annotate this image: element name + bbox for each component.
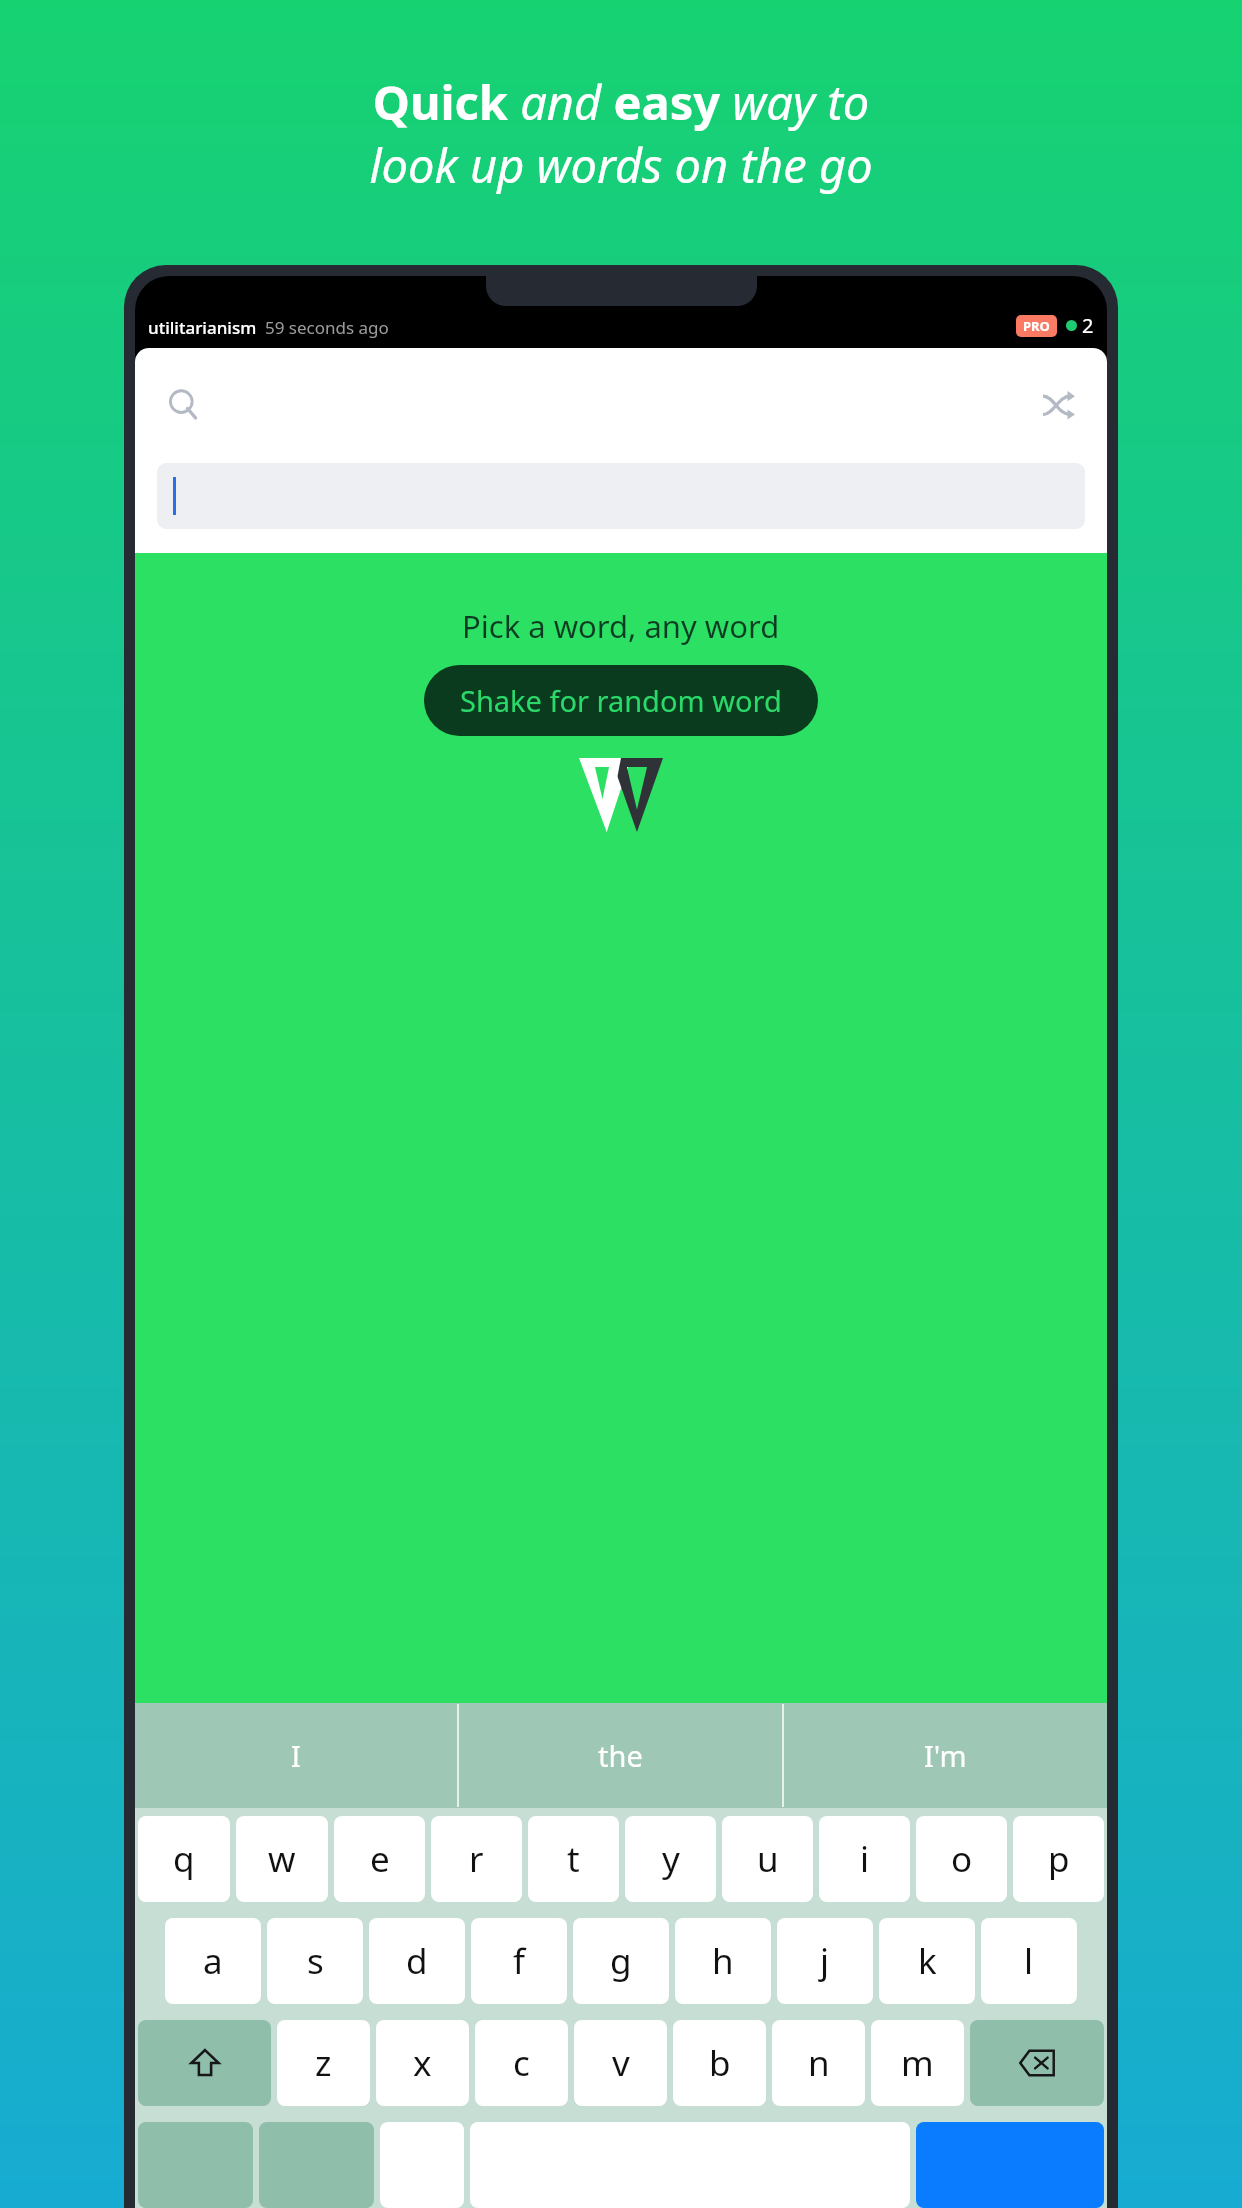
staticText: Shake for random word — [460, 681, 782, 720]
staticText: q — [173, 1835, 195, 1883]
button[interactable]: i — [819, 1816, 910, 1902]
button[interactable]: Backspace — [970, 2020, 1104, 2106]
button[interactable] — [157, 463, 1085, 529]
staticText: utilitarianism — [148, 316, 257, 339]
button[interactable]: o — [916, 1816, 1007, 1902]
button[interactable] — [138, 2122, 253, 2208]
button[interactable]: c — [475, 2020, 568, 2106]
button[interactable]: b — [673, 2020, 766, 2106]
staticText: c — [513, 2039, 530, 2087]
button[interactable]: Shuffle — [1035, 382, 1081, 428]
staticText: I — [291, 1736, 301, 1775]
button[interactable]: Shift — [138, 2020, 271, 2106]
staticText: u — [757, 1835, 779, 1883]
button[interactable]: s — [267, 1918, 363, 2004]
button[interactable]: t — [528, 1816, 619, 1902]
staticText: l — [1024, 1937, 1034, 1985]
button[interactable]: w — [236, 1816, 328, 1902]
button[interactable]: n — [772, 2020, 865, 2106]
staticText: o — [951, 1835, 973, 1883]
button[interactable]: r — [431, 1816, 522, 1902]
button[interactable]: a — [165, 1918, 261, 2004]
staticText: z — [315, 2039, 332, 2087]
staticText: n — [808, 2039, 830, 2087]
staticText: PRO — [1023, 317, 1050, 335]
button[interactable]: j — [777, 1918, 873, 2004]
button[interactable]: h — [675, 1918, 771, 2004]
staticText: g — [610, 1937, 632, 1985]
button[interactable]: I — [135, 1703, 457, 1808]
staticText: y — [662, 1835, 680, 1883]
staticText: p — [1048, 1835, 1070, 1883]
staticText: d — [406, 1937, 428, 1985]
button[interactable]: u — [722, 1816, 813, 1902]
staticText: a — [203, 1937, 223, 1985]
staticText: 59 seconds ago — [265, 316, 389, 339]
button[interactable]: q — [138, 1816, 230, 1902]
button[interactable]: p — [1013, 1816, 1104, 1902]
button[interactable]: k — [879, 1918, 975, 2004]
staticText: b — [709, 2039, 731, 2087]
button[interactable] — [916, 2122, 1104, 2208]
staticText: x — [413, 2039, 432, 2087]
button[interactable]: v — [574, 2020, 667, 2106]
button[interactable]: y — [625, 1816, 716, 1902]
button[interactable]: e — [334, 1816, 425, 1902]
staticText: f — [513, 1937, 526, 1985]
staticText: s — [307, 1937, 324, 1985]
button[interactable]: l — [981, 1918, 1077, 2004]
button[interactable]: x — [376, 2020, 469, 2106]
button[interactable]: m — [871, 2020, 964, 2106]
button[interactable]: d — [369, 1918, 465, 2004]
button[interactable]: f — [471, 1918, 567, 2004]
staticText: 2 — [1082, 312, 1094, 339]
staticText: I'm — [924, 1736, 967, 1775]
button[interactable]: Search — [161, 382, 207, 428]
button[interactable] — [380, 2122, 464, 2208]
staticText: h — [712, 1937, 734, 1985]
staticText: j — [820, 1937, 830, 1985]
button[interactable] — [259, 2122, 374, 2208]
button[interactable]: the — [459, 1703, 782, 1808]
staticText: e — [370, 1835, 390, 1883]
button[interactable]: g — [573, 1918, 669, 2004]
staticText: r — [469, 1835, 484, 1883]
button[interactable]: z — [277, 2020, 370, 2106]
staticText: i — [860, 1835, 870, 1883]
staticText: Pick a word, any word — [462, 605, 780, 647]
button[interactable]: PRO — [1016, 315, 1057, 337]
button[interactable]: Shake for random word — [424, 665, 818, 736]
staticText: v — [612, 2039, 630, 2087]
staticText: w — [268, 1835, 296, 1883]
staticText: the — [598, 1736, 643, 1775]
button[interactable]: I'm — [784, 1703, 1107, 1808]
staticText: Quick and easy way to look up words on t… — [369, 70, 873, 196]
staticText: t — [567, 1835, 580, 1883]
staticText: m — [901, 2039, 934, 2087]
staticText: k — [918, 1937, 937, 1985]
